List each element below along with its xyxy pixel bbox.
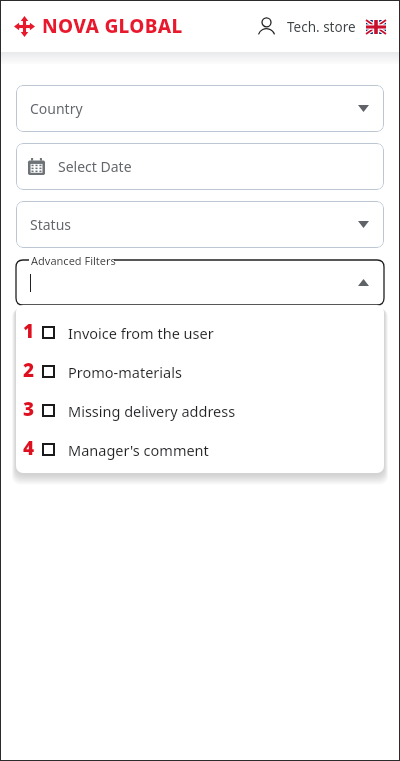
staticText: 2 <box>23 359 35 385</box>
staticText: 1 <box>23 318 35 344</box>
staticText: Manager's comment <box>68 440 209 460</box>
button[interactable]: Invoice from the user <box>16 313 384 352</box>
button[interactable]: Country <box>16 85 384 132</box>
staticText: Country <box>30 99 83 118</box>
button[interactable]: Status <box>16 201 384 248</box>
staticText: 2 <box>22 357 34 383</box>
staticText: Select Date <box>58 157 132 176</box>
staticText: 3 <box>25 396 37 422</box>
button[interactable]: Missing delivery address <box>16 391 384 430</box>
staticText: 3 <box>23 395 35 421</box>
button[interactable]: Advanced Filters <box>16 260 384 305</box>
staticText: 1 <box>22 318 34 344</box>
staticText: 2 <box>23 356 35 382</box>
staticText: 4 <box>23 437 35 463</box>
button[interactable]: Manager's comment <box>16 430 384 469</box>
staticText: 3 <box>23 396 35 422</box>
other: Nova Global logo <box>14 16 35 37</box>
staticText: 3 <box>23 398 35 424</box>
staticText: 4 <box>22 435 34 461</box>
staticText: 1 <box>23 320 35 346</box>
staticText: 2 <box>23 357 35 383</box>
staticText: Promo-materials <box>68 362 182 382</box>
staticText: 2 <box>25 357 37 383</box>
staticText: Tech. store <box>287 18 356 36</box>
other: Account <box>256 16 277 37</box>
other: Language: English <box>366 20 386 34</box>
staticText: 4 <box>23 435 35 461</box>
staticText: 1 <box>23 317 35 343</box>
staticText: Missing delivery address <box>68 401 236 421</box>
staticText: Invoice from the user <box>68 323 214 343</box>
staticText: 4 <box>25 435 37 461</box>
staticText: Advanced Filters <box>31 253 116 268</box>
button[interactable]: Promo-materials <box>16 352 384 391</box>
staticText: 4 <box>23 434 35 460</box>
staticText: 1 <box>25 318 37 344</box>
staticText: NOVA GLOBAL <box>42 13 183 39</box>
button[interactable]: Nova Global logo <box>14 13 183 39</box>
staticText: Status <box>30 215 72 234</box>
button[interactable]: Select Date <box>16 143 384 190</box>
button[interactable]: Account <box>256 16 386 37</box>
staticText: 3 <box>22 396 34 422</box>
